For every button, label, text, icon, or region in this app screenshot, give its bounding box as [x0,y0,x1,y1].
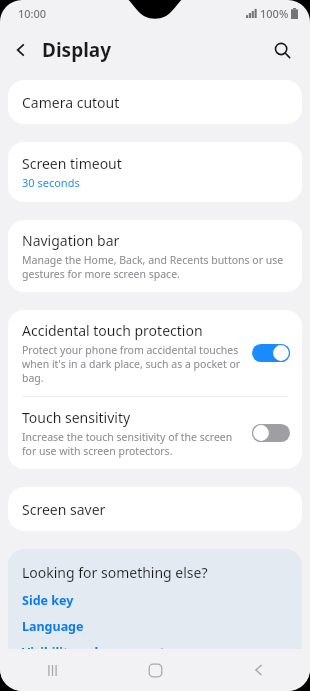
staticText: Language [22,618,84,635]
button[interactable]: Back [207,649,310,691]
staticText: Display [42,37,112,63]
staticText: Looking for something else? [22,563,208,582]
staticText: Navigation bar [22,231,120,250]
staticText: 30 seconds [22,175,80,190]
button[interactable]: Recents [0,649,104,691]
staticText: Visibility enhancements [22,644,172,661]
staticText: Camera cutout [22,93,120,112]
staticText: Side key [22,592,74,609]
button[interactable]: Touch sensitivity [8,397,302,469]
staticText: 10:00 [18,6,47,21]
button[interactable]: Toggle on [252,342,290,364]
staticText: Accidental touch protection [22,321,203,340]
button[interactable]: Back [0,29,42,71]
staticText: Protect your phone from accidental touch… [22,343,242,385]
button[interactable]: Home [104,649,207,691]
staticText: Increase the touch sensitivity of the sc… [22,430,242,458]
staticText: Screen timeout [22,154,122,173]
button[interactable]: Language [22,618,288,635]
staticText: Touch sensitivity [22,408,131,427]
button[interactable]: Side key [22,592,288,609]
button[interactable]: Screen timeout [8,142,302,202]
staticText: 100% [260,6,289,21]
button[interactable]: Accidental touch protection [8,310,302,396]
button[interactable]: Camera cutout [8,80,302,124]
button[interactable]: Toggle off [252,422,290,444]
button[interactable]: Navigation bar [8,220,302,292]
button[interactable]: Search [260,28,304,72]
button[interactable]: Visibility enhancements [22,644,288,661]
button[interactable]: Screen saver [8,487,302,531]
staticText: Manage the Home, Back, and Recents butto… [22,253,288,281]
staticText: Screen saver [22,500,106,519]
